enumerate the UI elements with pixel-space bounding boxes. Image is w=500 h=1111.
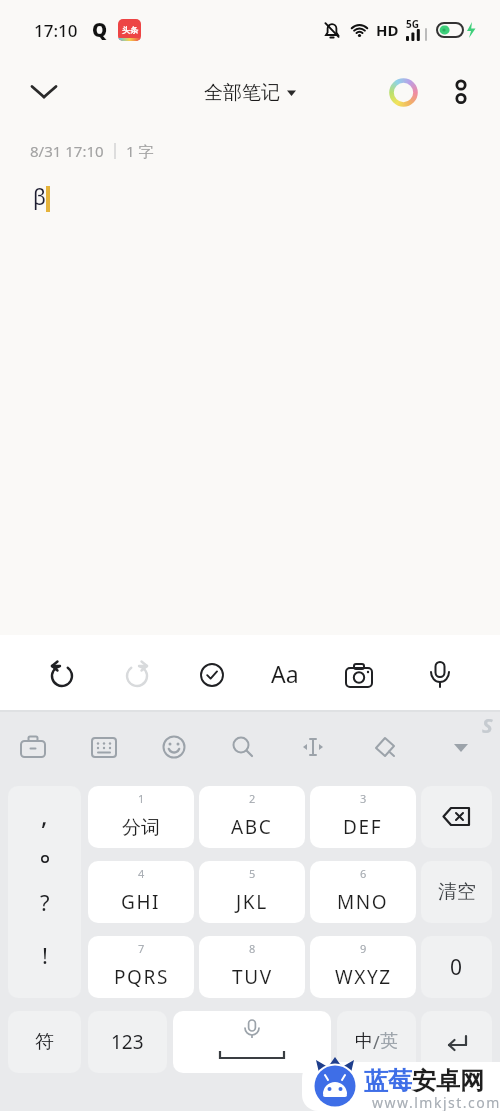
button[interactable]: 7: [88, 936, 194, 998]
button[interactable]: [421, 1011, 492, 1073]
button[interactable]: 1: [88, 786, 194, 848]
staticText: 4: [138, 866, 145, 881]
button[interactable]: [153, 726, 195, 768]
button[interactable]: [292, 726, 334, 768]
staticText: 1: [138, 791, 145, 806]
button[interactable]: 2: [199, 786, 305, 848]
staticText: 8/31 17:10: [30, 141, 104, 161]
button[interactable]: [222, 726, 264, 768]
staticText: 分词: [122, 816, 160, 840]
button[interactable]: [83, 726, 125, 768]
button[interactable]: 123: [88, 1011, 167, 1073]
button[interactable]: [40, 655, 84, 695]
button[interactable]: [364, 726, 406, 768]
button[interactable]: 5: [199, 861, 305, 923]
staticText: PQRS: [114, 964, 169, 990]
button[interactable]: [337, 655, 381, 695]
button[interactable]: [190, 655, 234, 695]
button[interactable]: [421, 786, 492, 848]
staticText: 7: [138, 941, 145, 956]
staticText: DEF: [343, 814, 383, 840]
staticText: 6: [360, 866, 367, 881]
button[interactable]: Aa: [261, 653, 309, 693]
button[interactable]: [22, 70, 66, 114]
staticText: 蓝莓: [364, 1066, 412, 1096]
staticText: !: [42, 940, 48, 970]
staticText: Aa: [271, 658, 299, 689]
staticText: 符: [35, 1030, 54, 1054]
button[interactable]: [382, 71, 424, 113]
staticText: TUV: [232, 964, 273, 990]
button[interactable]: 4: [88, 861, 194, 923]
button[interactable]: 全部笔记: [204, 81, 297, 105]
staticText: /: [373, 1030, 380, 1055]
staticText: GHI: [121, 889, 161, 915]
staticText: 1 字: [126, 141, 154, 161]
button[interactable]: 6: [310, 861, 416, 923]
staticText: 3: [360, 791, 367, 806]
staticText: 8: [249, 941, 256, 956]
staticText: ,: [41, 799, 48, 832]
button[interactable]: [440, 71, 482, 113]
staticText: 安卓网: [412, 1066, 484, 1096]
staticText: 123: [111, 1029, 144, 1055]
staticText: 9: [360, 941, 367, 956]
staticText: S: [482, 712, 493, 739]
staticText: HD: [376, 20, 399, 40]
button[interactable]: 8: [199, 936, 305, 998]
button[interactable]: 3: [310, 786, 416, 848]
staticText: 2: [249, 791, 256, 806]
staticText: 5G: [406, 17, 419, 31]
button[interactable]: 清空: [421, 861, 492, 923]
staticText: 英: [380, 1030, 398, 1053]
staticText: WXYZ: [335, 964, 392, 990]
button[interactable]: [115, 655, 159, 695]
staticText: MNO: [337, 889, 389, 915]
button[interactable]: 中: [337, 1011, 416, 1073]
staticText: www.lmkjst.com: [372, 1093, 500, 1111]
staticText: 中: [355, 1030, 373, 1053]
button[interactable]: [418, 655, 462, 695]
staticText: Q: [92, 17, 108, 43]
button[interactable]: 9: [310, 936, 416, 998]
button[interactable]: [173, 1011, 331, 1073]
button[interactable]: ,: [8, 786, 81, 998]
staticText: 全部笔记: [204, 81, 280, 105]
staticText: 头条: [122, 25, 138, 35]
staticText: ABC: [231, 814, 273, 840]
button[interactable]: 符: [8, 1011, 81, 1073]
button[interactable]: [440, 726, 482, 768]
staticText: 清空: [438, 880, 476, 904]
staticText: 17:10: [34, 19, 78, 42]
staticText: JKL: [236, 889, 268, 915]
button[interactable]: [12, 726, 54, 768]
staticText: 5: [249, 866, 256, 881]
staticText: β: [33, 183, 46, 212]
staticText: 0: [450, 953, 463, 982]
button[interactable]: 0: [421, 936, 492, 998]
staticText: ?: [40, 887, 50, 917]
